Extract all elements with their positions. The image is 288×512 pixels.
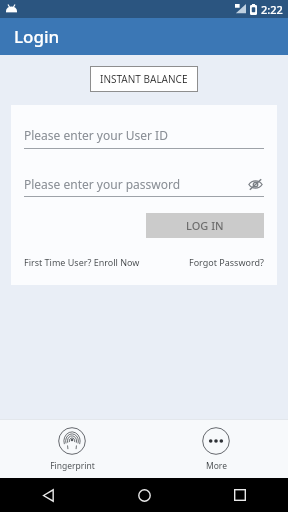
button[interactable]: LOG IN — [146, 213, 264, 238]
button[interactable]: Show password — [246, 175, 264, 193]
staticText: LOG IN — [186, 218, 224, 233]
staticText: Forgot Password? — [189, 256, 264, 268]
button[interactable]: First Time User? Enroll Now — [24, 256, 140, 268]
button[interactable]: INSTANT BALANCE — [90, 66, 198, 92]
staticText: INSTANT BALANCE — [100, 72, 188, 86]
staticText: Login — [14, 25, 60, 48]
button[interactable]: Please enter your password — [24, 175, 264, 197]
staticText: First Time User? Enroll Now — [24, 256, 140, 268]
staticText: Please enter your User ID — [24, 127, 168, 143]
button[interactable]: Fingerprint — [0, 420, 144, 478]
button[interactable]: Please enter your User ID — [24, 127, 264, 149]
staticText: Please enter your password — [24, 176, 181, 192]
staticText: Fingerprint — [50, 460, 95, 472]
button[interactable]: Home — [96, 478, 192, 512]
button[interactable]: Back — [0, 478, 96, 512]
staticText: More — [206, 460, 227, 472]
button[interactable]: More — [144, 420, 288, 478]
button[interactable]: Recent apps — [192, 478, 288, 512]
staticText: 2:22 — [261, 2, 283, 17]
button[interactable]: Forgot Password? — [189, 256, 264, 268]
